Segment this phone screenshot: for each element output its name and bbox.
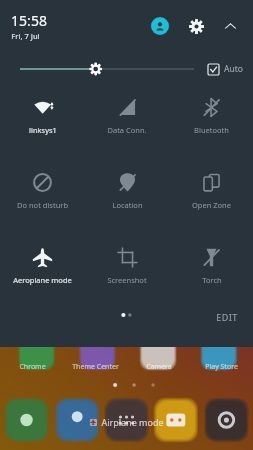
staticText: Airplane mode [101,416,164,428]
staticText: Data Conn. [107,125,147,135]
button[interactable]: Settings [183,13,209,39]
staticText: EDIT [216,311,238,323]
button[interactable]: Open Zone [192,172,231,210]
staticText: Fri, 7 Jul [11,31,40,41]
staticText: Torch [202,275,222,285]
button[interactable]: Auto [208,63,243,75]
staticText: Play Store [205,362,238,372]
staticText: Theme Center [72,362,119,372]
button[interactable]: Torch [201,247,222,285]
button[interactable]: Screenshot [107,247,147,285]
staticText: Auto [224,63,243,75]
button[interactable]: Collapse [217,13,243,39]
staticText: Chrome [19,362,46,372]
button[interactable]: Do not disturb [17,172,68,210]
staticText: Camera [146,362,172,372]
button[interactable] [20,58,194,80]
staticText: 15:58 [11,11,47,30]
staticText: Aeroplane mode [13,275,72,285]
staticText: Do not disturb [17,200,68,210]
button[interactable]: User profile [147,13,173,39]
button[interactable]: Aeroplane mode [13,247,72,285]
button[interactable]: EDIT [214,310,240,324]
staticText: Bluetooth [194,125,229,135]
button[interactable]: Bluetooth [194,97,229,135]
staticText: linksys1 [29,125,57,135]
button[interactable]: Data Conn. [107,97,147,135]
button[interactable]: Location [112,172,143,210]
staticText: Open Zone [192,200,231,210]
staticText: Screenshot [107,275,147,285]
button[interactable]: linksys1 [29,97,57,135]
staticText: Location [112,200,143,210]
